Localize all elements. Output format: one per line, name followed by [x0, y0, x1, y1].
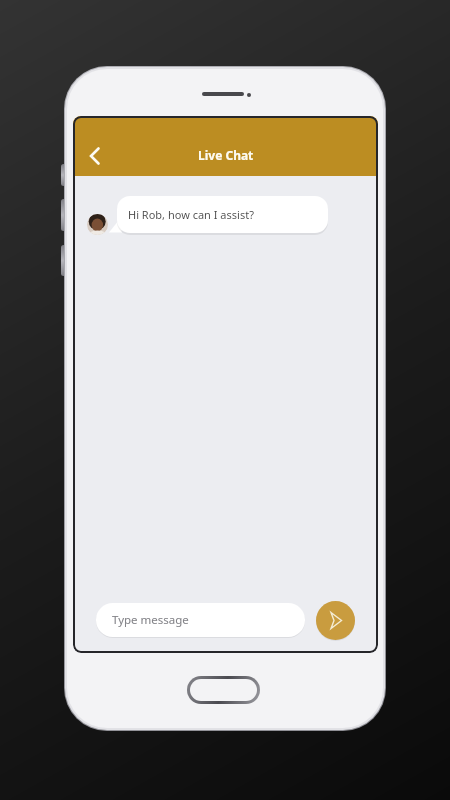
button[interactable]	[316, 601, 355, 640]
staticText: Hi Rob, how can I assist?	[128, 207, 254, 222]
staticText: Type message	[112, 612, 189, 628]
button[interactable]: Type message	[96, 603, 305, 637]
staticText: Live Chat	[198, 147, 254, 163]
button[interactable]	[81, 142, 109, 170]
button[interactable]	[187, 676, 260, 704]
